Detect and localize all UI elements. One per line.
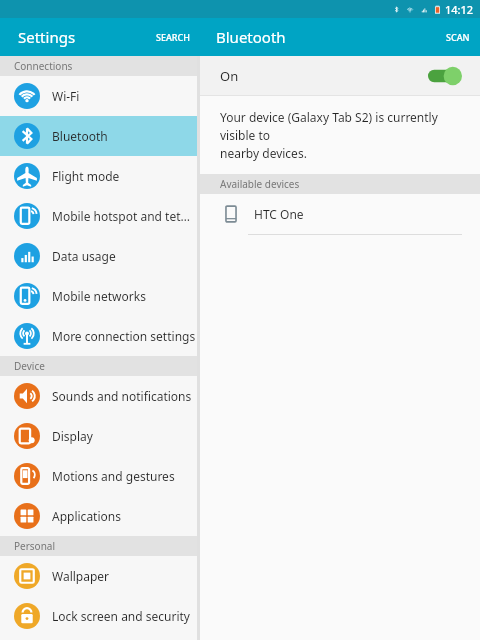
staticText: Mobile hotspot and tether..: [52, 208, 197, 224]
staticText: More connection settings: [52, 328, 196, 344]
staticText: Personal: [14, 539, 56, 553]
staticText: Device: [14, 359, 45, 373]
staticText: On: [220, 67, 239, 85]
button[interactable]: Display: [0, 416, 197, 456]
staticText: HTC One: [254, 206, 304, 222]
button[interactable]: Wi-Fi: [0, 76, 197, 116]
button[interactable]: SCAN: [436, 18, 480, 56]
button[interactable]: Bluetooth on: [428, 66, 462, 86]
staticText: Lock screen and security: [52, 608, 190, 624]
staticText: Applications: [52, 508, 121, 524]
staticText: Wi-Fi: [52, 88, 80, 104]
button[interactable]: Wallpaper: [0, 556, 197, 596]
button[interactable]: SEARCH: [146, 18, 200, 56]
staticText: Flight mode: [52, 168, 120, 184]
button[interactable]: Flight mode: [0, 156, 197, 196]
staticText: Bluetooth: [216, 27, 286, 47]
button[interactable]: Motions and gestures: [0, 456, 197, 496]
button[interactable]: More connection settings: [0, 316, 197, 356]
staticText: Data usage: [52, 248, 116, 264]
staticText: SCAN: [446, 31, 470, 43]
staticText: Connections: [14, 59, 73, 73]
staticText: Sounds and notifications: [52, 388, 192, 404]
button[interactable]: Applications: [0, 496, 197, 536]
staticText: Display: [52, 428, 93, 444]
button[interactable]: Lock screen and security: [0, 596, 197, 636]
button[interactable]: Data usage: [0, 236, 197, 276]
staticText: Bluetooth: [52, 128, 108, 144]
button[interactable]: On: [200, 56, 480, 95]
button[interactable]: Bluetooth: [0, 116, 197, 156]
button[interactable]: Mobile networks: [0, 276, 197, 316]
staticText: Mobile networks: [52, 288, 146, 304]
staticText: SEARCH: [156, 31, 190, 43]
button[interactable]: Mobile hotspot and tether..: [0, 196, 197, 236]
staticText: Your device (Galaxy Tab S2) is currently…: [220, 109, 466, 162]
staticText: Wallpaper: [52, 568, 110, 584]
staticText: Settings: [18, 27, 76, 47]
staticText: Available devices: [220, 177, 300, 191]
button[interactable]: Sounds and notifications: [0, 376, 197, 416]
button[interactable]: HTC One: [200, 194, 480, 234]
staticText: 14:12: [445, 2, 474, 17]
staticText: Motions and gestures: [52, 468, 175, 484]
